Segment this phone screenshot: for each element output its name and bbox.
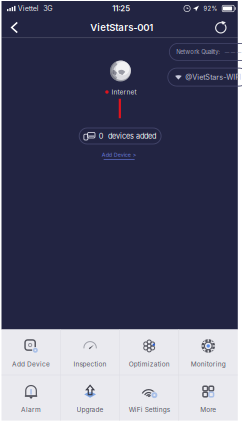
staticText: Network Quality: <box>176 48 220 55</box>
button[interactable]: Inspection <box>68 331 112 373</box>
button[interactable]: Optimization <box>125 331 173 373</box>
staticText: Optimization <box>129 360 170 368</box>
staticText: @VietStars-WIFI <box>185 73 241 81</box>
staticText: devices added <box>108 132 156 140</box>
staticText: WiFi Settings <box>129 406 170 413</box>
staticText: 11:25 <box>112 4 130 13</box>
staticText: Inspection <box>74 360 107 368</box>
staticText: Add Device <box>12 360 50 368</box>
staticText: VietStars-001 <box>90 22 153 33</box>
button[interactable]: Monitoring <box>186 331 230 373</box>
staticText: Monitoring <box>191 360 226 368</box>
button[interactable]: Upgrade <box>68 377 112 419</box>
staticText: Upgrade <box>77 406 104 413</box>
button[interactable]: Back <box>0 14 29 40</box>
button[interactable]: Add Device > <box>96 148 143 163</box>
staticText: Add Device > <box>102 151 137 158</box>
staticText: 92% <box>204 5 218 12</box>
staticText: Viettel <box>18 4 39 13</box>
staticText: 0 <box>99 132 104 140</box>
staticText: Alarm <box>21 406 41 413</box>
staticText: More <box>200 406 216 413</box>
staticText: 3G <box>43 4 52 13</box>
button[interactable]: WiFi Settings <box>125 377 173 419</box>
button[interactable]: Add Device <box>9 331 53 373</box>
button[interactable]: Alarm <box>9 377 53 419</box>
button[interactable]: Refresh <box>206 14 236 40</box>
staticText: — — — <box>225 49 242 55</box>
staticText: Internet <box>111 88 136 96</box>
button[interactable]: More <box>186 377 230 419</box>
